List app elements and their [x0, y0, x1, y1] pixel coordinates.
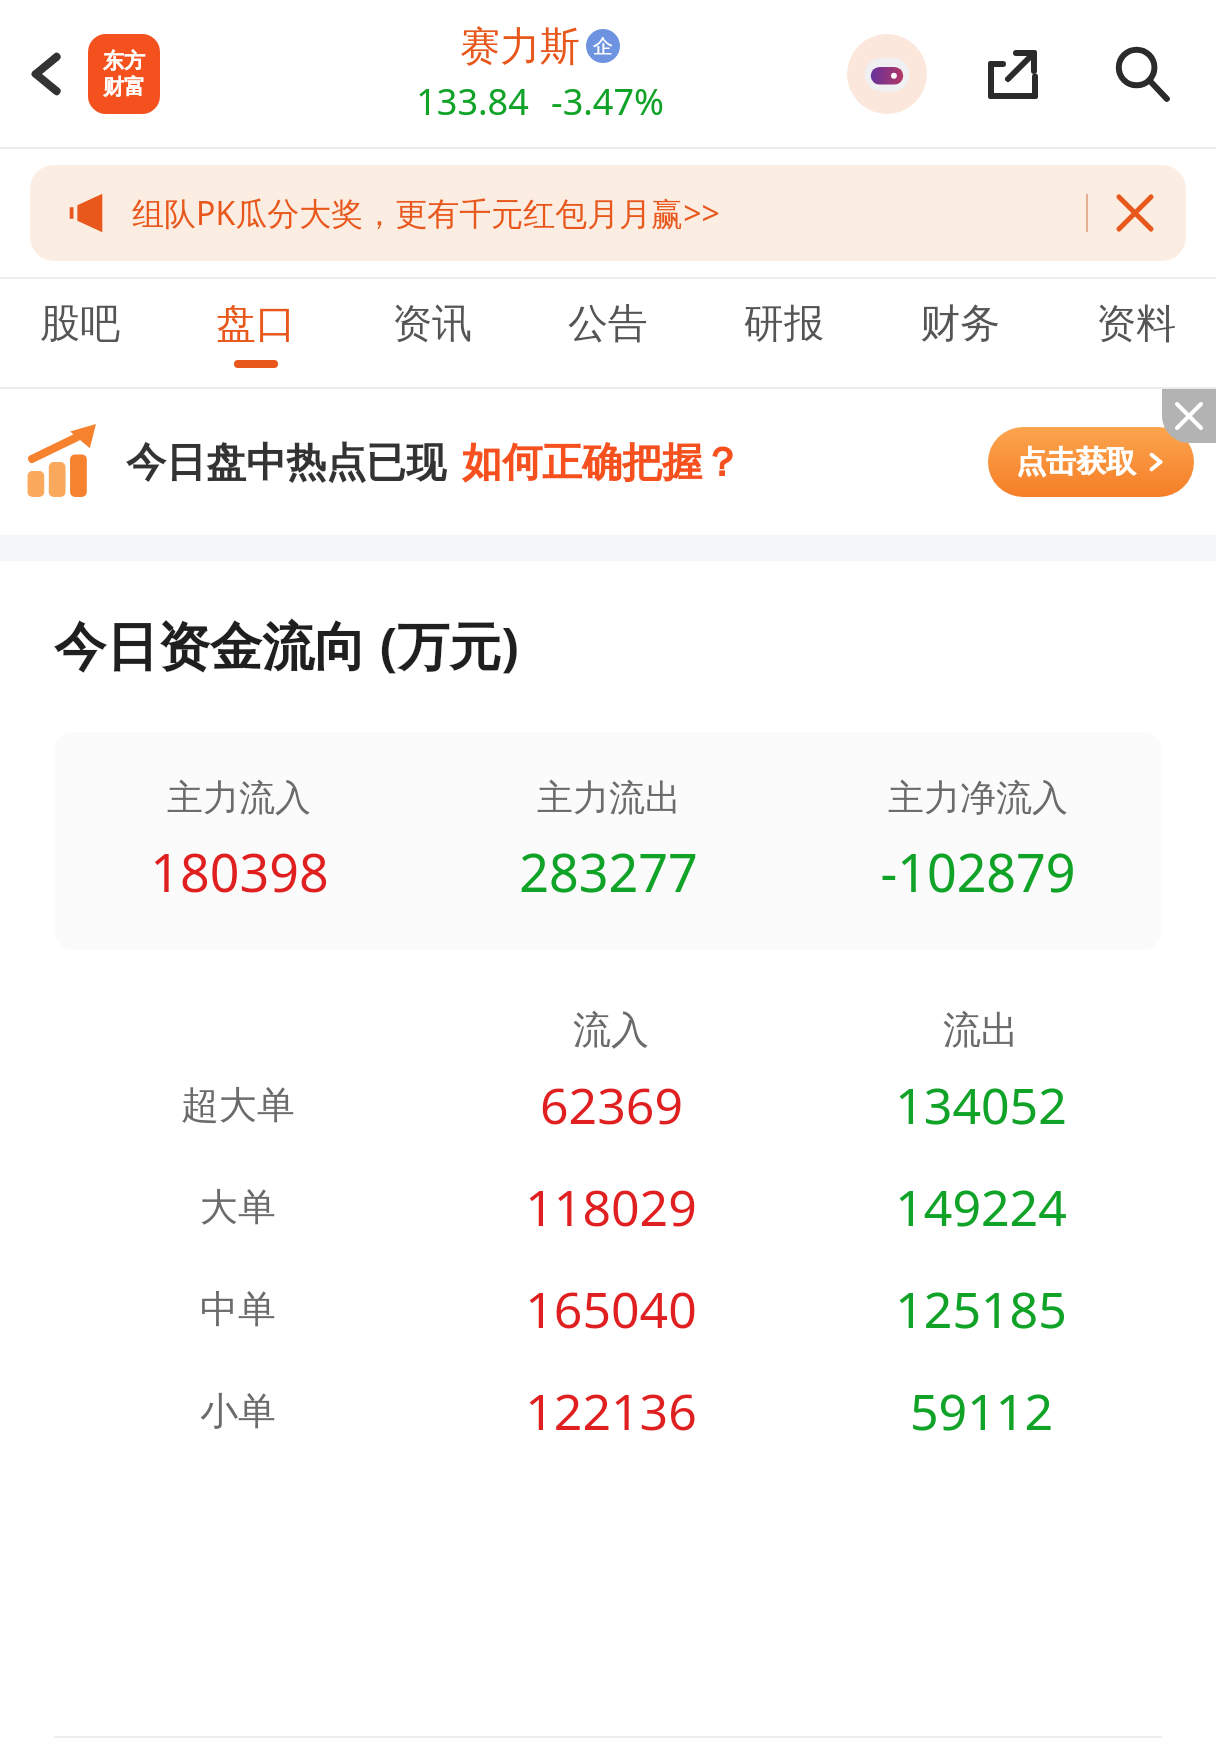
staticText: 133.84 — [416, 77, 529, 126]
staticText: 62369 — [540, 1071, 683, 1139]
staticText: 如何正确把握？ — [462, 437, 742, 487]
staticText: 公告 — [568, 298, 648, 348]
staticText: 主力流出 — [537, 775, 681, 820]
staticText: 149224 — [895, 1173, 1067, 1241]
staticText: 组队PK瓜分大奖，更有千元红包月月赢>> — [132, 191, 720, 235]
button[interactable]: 中单 — [50, 1258, 1166, 1360]
staticText: 180398 — [150, 836, 329, 907]
button[interactable]: 公告 — [568, 279, 648, 387]
button[interactable]: 盘口 — [216, 279, 296, 387]
staticText: 流入 — [573, 1006, 649, 1054]
button[interactable]: 大单 — [50, 1156, 1166, 1258]
button[interactable]: Search — [1098, 30, 1186, 118]
staticText: 研报 — [744, 298, 824, 348]
staticText: 今日资金流向 (万元) — [54, 609, 519, 680]
staticText: 小单 — [200, 1387, 276, 1435]
staticText: 企 — [593, 34, 613, 59]
staticText: 财富 — [103, 74, 145, 100]
staticText: 财务 — [920, 298, 1000, 348]
button[interactable]: Close ad — [1162, 389, 1216, 443]
staticText: 165040 — [525, 1275, 697, 1343]
button[interactable]: 主力流入 — [54, 732, 1162, 950]
button[interactable]: 今日盘中热点已现 — [0, 389, 1216, 535]
staticText: 点击获取 — [1016, 443, 1136, 481]
button[interactable]: 小单 — [50, 1360, 1166, 1462]
staticText: 283277 — [519, 836, 698, 907]
button[interactable]: 超大单 — [50, 1054, 1166, 1156]
button[interactable]: Share — [970, 31, 1056, 117]
button[interactable]: 资讯 — [392, 279, 472, 387]
staticText: 125185 — [895, 1275, 1067, 1343]
staticText: 大单 — [200, 1183, 276, 1231]
staticText: 59112 — [910, 1377, 1053, 1445]
button[interactable]: East Money home — [88, 34, 160, 114]
button[interactable]: 财务 — [920, 279, 1000, 387]
button[interactable]: 资料 — [1096, 279, 1176, 387]
button[interactable]: AI assistant — [844, 31, 930, 117]
button[interactable]: 研报 — [744, 279, 824, 387]
button[interactable]: 点击获取 — [1016, 427, 1166, 497]
staticText: 盘口 — [216, 298, 296, 348]
staticText: 118029 — [525, 1173, 697, 1241]
staticText: 资讯 — [392, 298, 472, 348]
button[interactable]: Close banner — [1110, 188, 1160, 238]
staticText: 122136 — [525, 1377, 697, 1445]
staticText: 今日盘中热点已现 — [126, 437, 446, 487]
staticText: 主力净流入 — [888, 775, 1068, 820]
button[interactable]: 组队PK瓜分大奖，更有千元红包月月赢>> — [30, 165, 1186, 261]
staticText: 赛力斯 — [460, 21, 580, 71]
staticText: 资料 — [1096, 298, 1176, 348]
staticText: 中单 — [200, 1285, 276, 1333]
staticText: -102879 — [880, 836, 1076, 907]
button[interactable]: Back — [12, 39, 82, 109]
staticText: 东方 — [103, 48, 145, 74]
staticText: 超大单 — [181, 1081, 295, 1129]
staticText: 股吧 — [40, 298, 120, 348]
staticText: 134052 — [895, 1071, 1067, 1139]
staticText: -3.47% — [551, 77, 664, 126]
staticText: 流出 — [943, 1006, 1019, 1054]
staticText: 主力流入 — [167, 775, 311, 820]
button[interactable]: 股吧 — [40, 279, 120, 387]
